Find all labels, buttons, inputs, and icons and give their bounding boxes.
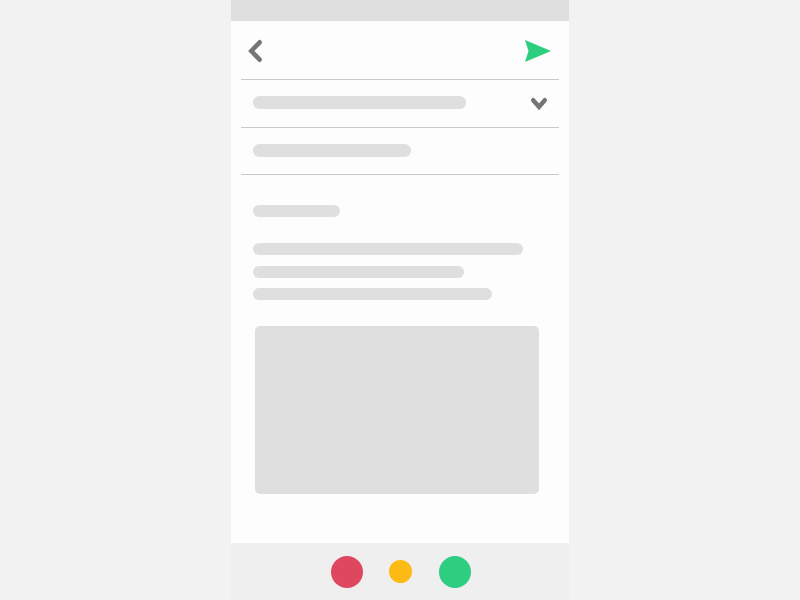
- button[interactable]: Back: [236, 32, 274, 70]
- button[interactable]: Discard draft: [331, 556, 363, 588]
- button[interactable]: Send message: [439, 556, 471, 588]
- button[interactable]: Send: [519, 32, 557, 70]
- button[interactable]: [231, 176, 569, 316]
- button[interactable]: [231, 80, 569, 127]
- button[interactable]: Save draft: [389, 560, 412, 583]
- button[interactable]: [231, 128, 569, 174]
- button[interactable]: Show Cc and Bcc: [521, 86, 557, 120]
